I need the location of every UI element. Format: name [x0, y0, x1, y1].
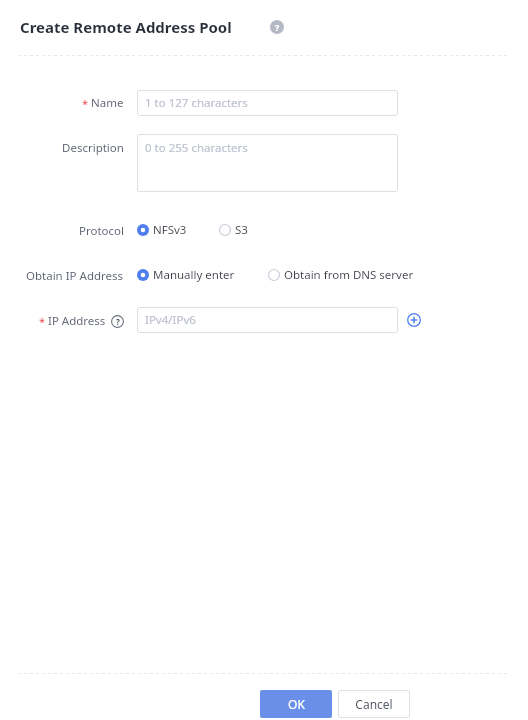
- button[interactable]: IPv4/IPv6: [137, 307, 398, 333]
- staticText: 0 to 255 characters: [145, 140, 248, 156]
- button[interactable]: 1 to 127 characters: [137, 90, 398, 116]
- staticText: IP Address: [48, 313, 106, 329]
- button[interactable]: Help about remote address pool: [270, 20, 284, 34]
- staticText: ?: [116, 316, 120, 327]
- button[interactable]: S3: [219, 222, 248, 238]
- staticText: Name: [91, 95, 124, 111]
- staticText: Obtain from DNS server: [284, 267, 414, 283]
- staticText: OK: [288, 696, 305, 712]
- staticText: NFSv3: [153, 222, 187, 238]
- staticText: Protocol: [79, 223, 124, 239]
- button[interactable]: OK: [260, 690, 332, 718]
- button[interactable]: NFSv3: [137, 222, 187, 238]
- staticText: *: [82, 96, 91, 111]
- staticText: Manually enter: [153, 267, 235, 283]
- staticText: Obtain IP Address: [26, 268, 124, 284]
- button[interactable]: Cancel: [338, 690, 410, 718]
- staticText: Description: [62, 140, 124, 156]
- staticText: IPv4/IPv6: [145, 312, 196, 328]
- staticText: Create Remote Address Pool: [20, 17, 232, 37]
- button[interactable]: Obtain from DNS server: [268, 267, 414, 283]
- staticText: *: [39, 314, 48, 329]
- button[interactable]: Manually enter: [137, 267, 235, 283]
- staticText: Cancel: [355, 696, 393, 712]
- staticText: 1 to 127 characters: [145, 95, 248, 111]
- button[interactable]: Add IP address: [407, 313, 421, 327]
- staticText: ?: [275, 21, 280, 33]
- button[interactable]: 0 to 255 characters: [137, 134, 398, 192]
- button[interactable]: Help about IP address: [111, 315, 124, 328]
- staticText: S3: [235, 222, 248, 238]
